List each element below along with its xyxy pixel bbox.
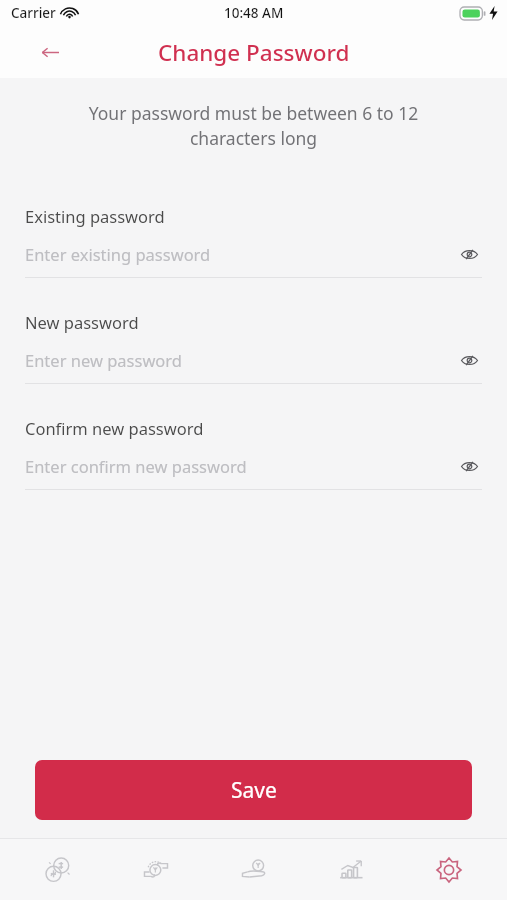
staticText: Enter confirm new password bbox=[25, 455, 456, 477]
staticText: Your password must be between 6 to 12 ch… bbox=[28, 101, 479, 150]
staticText: Existing password bbox=[25, 205, 165, 227]
button[interactable]: Toggle password visibility bbox=[456, 453, 482, 479]
staticText: New password bbox=[25, 311, 139, 333]
button[interactable]: New password bbox=[25, 311, 482, 384]
button[interactable]: Back bbox=[30, 32, 70, 72]
staticText: Save bbox=[231, 776, 277, 805]
staticText: Carrier bbox=[11, 4, 56, 22]
staticText: Enter existing password bbox=[25, 243, 456, 265]
button[interactable]: Toggle password visibility bbox=[456, 241, 482, 267]
button[interactable]: Settings bbox=[409, 841, 489, 899]
button[interactable]: Exchange bbox=[116, 841, 196, 899]
button[interactable]: Save bbox=[35, 760, 472, 820]
staticText: Enter new password bbox=[25, 349, 456, 371]
button[interactable]: Existing password bbox=[25, 205, 482, 278]
staticText: Change Password bbox=[158, 37, 350, 68]
button[interactable]: Receive money bbox=[214, 841, 294, 899]
staticText: Confirm new password bbox=[25, 417, 204, 439]
staticText: 10:48 AM bbox=[224, 4, 284, 22]
button[interactable]: Statistics bbox=[311, 841, 391, 899]
button[interactable]: Toggle password visibility bbox=[456, 347, 482, 373]
button[interactable]: Currency rates bbox=[18, 841, 98, 899]
button[interactable]: Confirm new password bbox=[25, 417, 482, 490]
